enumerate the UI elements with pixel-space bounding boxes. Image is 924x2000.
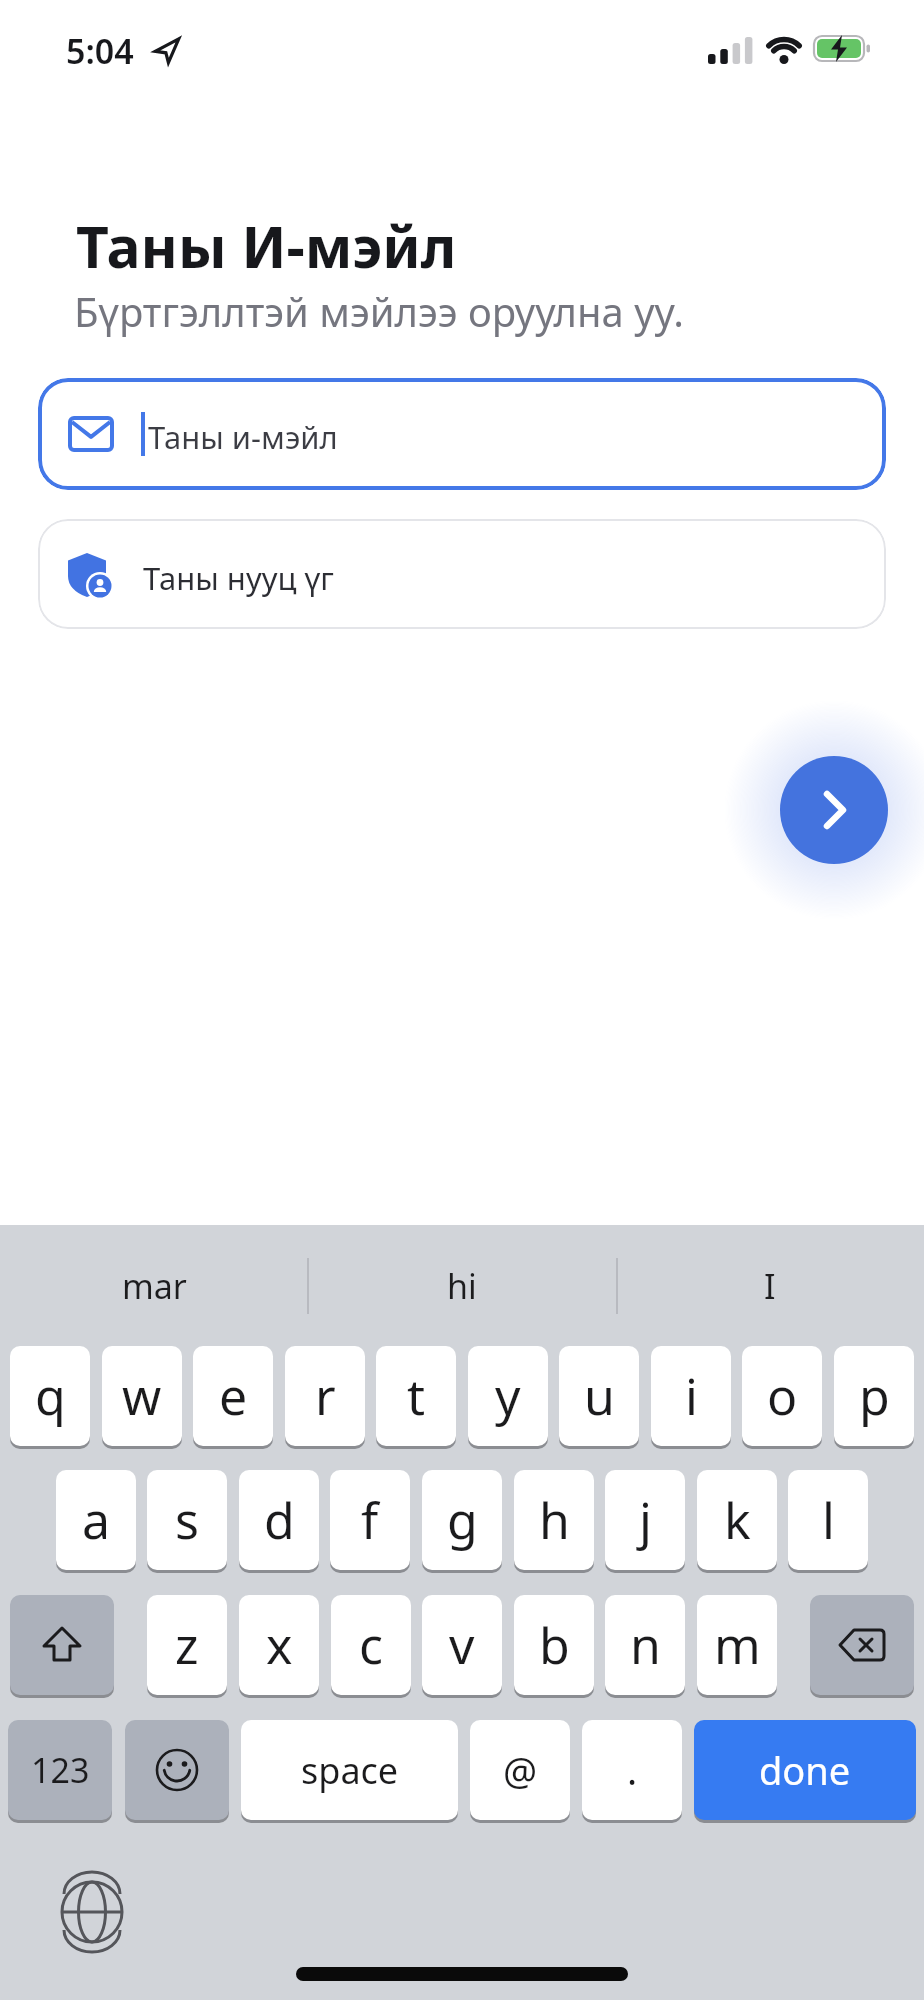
button[interactable]: y [468, 1346, 548, 1446]
staticText: y [495, 1362, 521, 1430]
staticText: 5:04 [66, 28, 134, 74]
button[interactable] [780, 756, 888, 864]
button[interactable] [810, 1595, 914, 1695]
button[interactable]: hi [308, 1252, 616, 1320]
staticText: Таны нууц үг [143, 557, 334, 599]
staticText: w [122, 1362, 162, 1430]
button[interactable]: v [422, 1595, 502, 1695]
staticText: c [359, 1611, 383, 1679]
button[interactable]: u [559, 1346, 639, 1446]
staticText: r [315, 1362, 336, 1430]
staticText: hi [447, 1263, 477, 1309]
staticText: mar [122, 1263, 187, 1309]
button[interactable]: t [376, 1346, 456, 1446]
staticText: I [764, 1263, 776, 1309]
button[interactable]: g [422, 1470, 502, 1570]
button[interactable]: Таны и-мэйл [38, 378, 886, 490]
button[interactable]: x [239, 1595, 319, 1695]
staticText: l [822, 1486, 835, 1554]
button[interactable]: e [193, 1346, 273, 1446]
button[interactable]: b [514, 1595, 594, 1695]
button[interactable]: a [56, 1470, 136, 1570]
staticText: j [639, 1486, 652, 1554]
button[interactable]: j [605, 1470, 685, 1570]
staticText: t [407, 1362, 426, 1430]
button[interactable]: c [331, 1595, 411, 1695]
staticText: v [449, 1611, 475, 1679]
staticText: g [447, 1486, 478, 1554]
button[interactable]: f [330, 1470, 410, 1570]
staticText: f [361, 1486, 379, 1554]
button[interactable]: q [10, 1346, 90, 1446]
staticText: @ [503, 1744, 538, 1796]
staticText: . [627, 1744, 638, 1796]
staticText: a [82, 1486, 111, 1554]
button[interactable]: space [241, 1720, 458, 1820]
staticText: e [219, 1362, 248, 1430]
staticText: u [584, 1362, 615, 1430]
staticText: done [759, 1744, 851, 1796]
staticText: p [859, 1362, 890, 1430]
staticText: m [714, 1611, 761, 1679]
button[interactable] [10, 1595, 114, 1695]
button[interactable]: p [834, 1346, 914, 1446]
button[interactable]: mar [0, 1252, 308, 1320]
button[interactable]: k [697, 1470, 777, 1570]
button[interactable]: r [285, 1346, 365, 1446]
button[interactable]: 123 [8, 1720, 112, 1820]
staticText: b [539, 1611, 570, 1679]
staticText: o [767, 1362, 798, 1430]
staticText: q [35, 1362, 66, 1430]
button[interactable]: m [697, 1595, 777, 1695]
button[interactable]: n [605, 1595, 685, 1695]
staticText: Таны И-мэйл [76, 207, 457, 285]
staticText: x [266, 1611, 293, 1679]
button[interactable]: d [239, 1470, 319, 1570]
button[interactable]: i [651, 1346, 731, 1446]
staticText: 123 [31, 1747, 90, 1793]
button[interactable]: Таны нууц үг [38, 519, 886, 629]
button[interactable]: I [616, 1252, 924, 1320]
button[interactable]: z [147, 1595, 227, 1695]
staticText: d [264, 1486, 295, 1554]
staticText: Таны и-мэйл [148, 416, 338, 458]
button[interactable]: s [147, 1470, 227, 1570]
staticText: s [175, 1486, 199, 1554]
staticText: i [685, 1362, 698, 1430]
staticText: z [175, 1611, 199, 1679]
button[interactable]: done [694, 1720, 916, 1820]
staticText: Бүртгэллтэй мэйлээ оруулна уу. [74, 284, 685, 338]
button[interactable] [125, 1720, 229, 1820]
button[interactable]: o [742, 1346, 822, 1446]
staticText: k [724, 1486, 751, 1554]
staticText: h [539, 1486, 570, 1554]
button[interactable]: w [102, 1346, 182, 1446]
button[interactable]: @ [470, 1720, 570, 1820]
button[interactable]: l [788, 1470, 868, 1570]
staticText: space [301, 1746, 399, 1795]
staticText: n [630, 1611, 661, 1679]
button[interactable]: h [514, 1470, 594, 1570]
button[interactable]: . [582, 1720, 682, 1820]
